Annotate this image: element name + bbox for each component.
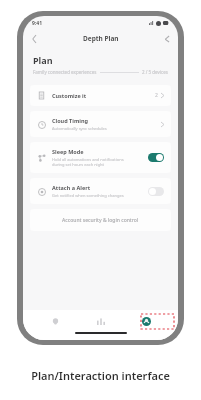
staticText: Depth Plan <box>83 34 119 43</box>
button[interactable]: Profile <box>132 312 160 330</box>
staticText: Account security & login control <box>62 217 139 224</box>
button[interactable]: Toggle on <box>148 153 164 162</box>
button[interactable]: Toggle off <box>148 187 164 196</box>
button[interactable]: More <box>160 32 173 45</box>
staticText: Plan/Interaction interface <box>31 368 170 383</box>
button[interactable]: Back <box>28 32 41 45</box>
staticText: Attach a Alert <box>52 184 91 191</box>
staticText: Plan <box>33 54 53 66</box>
staticText: Hold all automations and notifications d… <box>52 157 124 167</box>
staticText: Automatically sync schedules <box>52 126 107 131</box>
button[interactable]: Attach a Alert <box>30 178 171 204</box>
button[interactable]: Cloud Timing <box>30 111 171 137</box>
staticText: 9:41 <box>32 20 42 27</box>
staticText: Family connected experiences <box>33 69 97 75</box>
button[interactable]: Account security & login control <box>30 209 171 231</box>
staticText: Cloud Timing <box>52 117 88 124</box>
button[interactable]: Activity <box>87 312 115 330</box>
staticText: Get notified when something changes <box>52 193 124 198</box>
staticText: 2 <box>155 92 158 99</box>
staticText: Sleep Mode <box>52 148 84 155</box>
staticText: 2 / 5 devices <box>142 69 168 75</box>
staticText: Customize it <box>52 92 87 99</box>
button[interactable]: Home <box>41 312 69 330</box>
button[interactable]: Sleep Mode <box>30 142 171 173</box>
button[interactable]: Customize it <box>30 85 171 106</box>
